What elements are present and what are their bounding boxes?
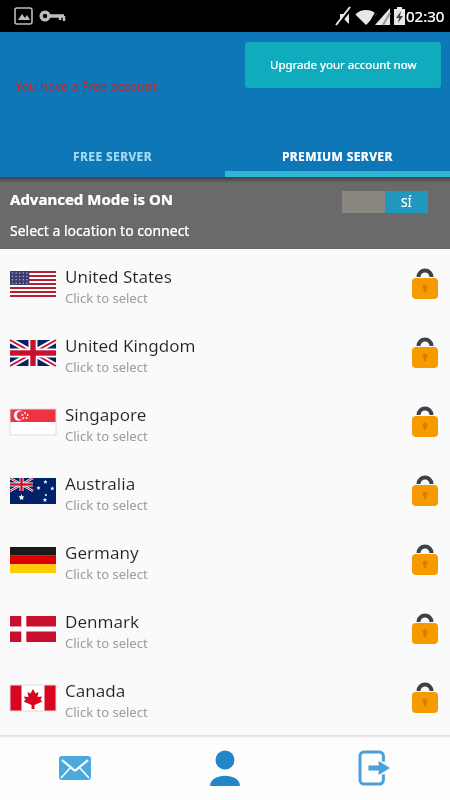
staticText: United States [65, 265, 172, 288]
button[interactable]: Australia [0, 456, 450, 525]
staticText: PREMIUM SERVER [282, 148, 393, 164]
button[interactable]: FREE SERVER [0, 135, 225, 177]
staticText: Canada [65, 679, 126, 702]
staticText: You have a Free account [15, 78, 157, 95]
staticText: Advanced Mode is ON [10, 189, 174, 209]
staticText: SÍ [401, 194, 412, 210]
staticText: Click to select [65, 496, 148, 514]
staticText: United Kingdom [65, 334, 196, 357]
staticText: Click to select [65, 565, 148, 583]
button[interactable] [150, 735, 300, 800]
staticText: Click to select [65, 358, 148, 376]
staticText: 02:30 [406, 6, 445, 26]
button[interactable] [0, 735, 150, 800]
staticText: Click to select [65, 427, 148, 445]
staticText: Click to select [65, 703, 148, 721]
staticText: Upgrade your account now [270, 57, 417, 73]
staticText: Germany [65, 541, 139, 564]
button[interactable]: Upgrade your account now [245, 42, 441, 88]
staticText: Australia [65, 472, 136, 495]
button[interactable]: Denmark [0, 594, 450, 663]
button[interactable]: Canada [0, 663, 450, 732]
button[interactable]: United States [0, 249, 450, 318]
staticText: Singapore [65, 403, 147, 426]
staticText: Select a location to connect [10, 221, 190, 240]
staticText: Click to select [65, 289, 148, 307]
button[interactable]: Germany [0, 525, 450, 594]
button[interactable]: SÍ [342, 191, 428, 213]
button[interactable]: United Kingdom [0, 318, 450, 387]
button[interactable]: Singapore [0, 387, 450, 456]
button[interactable]: PREMIUM SERVER [225, 135, 450, 177]
staticText: Denmark [65, 610, 140, 633]
button[interactable] [300, 735, 450, 800]
staticText: Click to select [65, 634, 148, 652]
staticText: FREE SERVER [73, 148, 153, 164]
